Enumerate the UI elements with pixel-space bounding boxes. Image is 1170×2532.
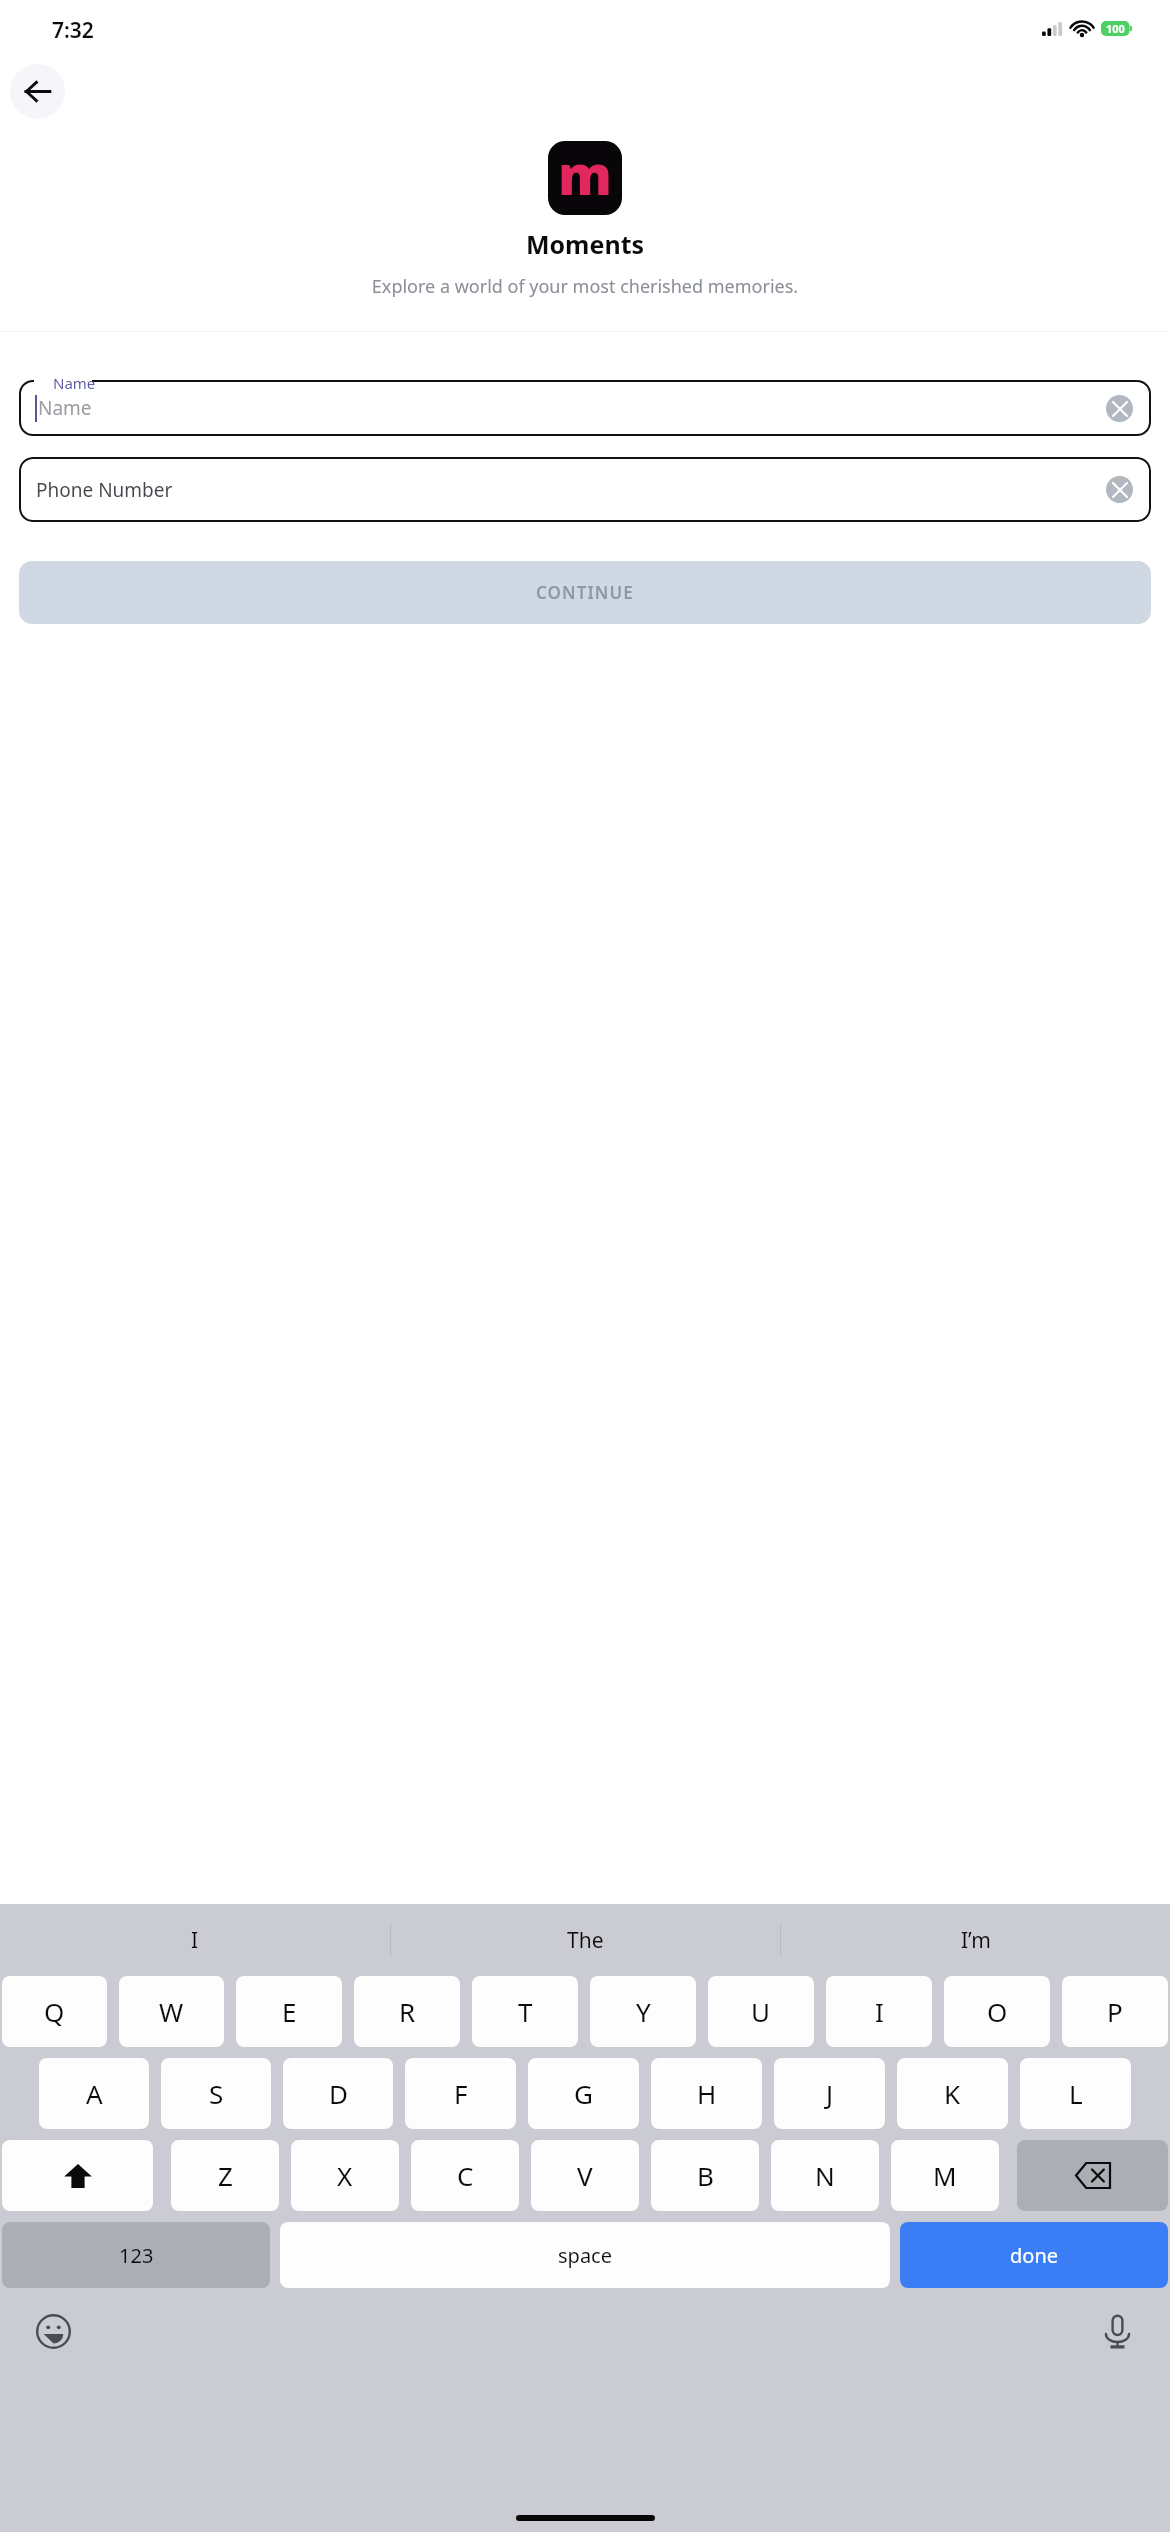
staticText: I: [875, 1994, 884, 2029]
button[interactable]: R: [354, 1976, 460, 2047]
staticText: J: [826, 2076, 834, 2111]
button[interactable]: L: [1020, 2058, 1131, 2129]
button[interactable]: E: [236, 1976, 342, 2047]
staticText: G: [574, 2076, 593, 2111]
button[interactable]: Clear text: [1106, 395, 1133, 422]
staticText: X: [337, 2158, 353, 2193]
button[interactable]: V: [531, 2140, 639, 2211]
staticText: Name: [53, 373, 96, 393]
button[interactable]: T: [472, 1976, 578, 2047]
staticText: done: [1010, 2242, 1059, 2269]
button[interactable]: W: [119, 1976, 224, 2047]
staticText: Q: [44, 1994, 65, 2029]
button[interactable]: Q: [2, 1976, 107, 2047]
staticText: W: [159, 1994, 184, 2029]
staticText: CONTINUE: [536, 581, 634, 604]
staticText: I’m: [961, 1926, 991, 1955]
button[interactable]: G: [528, 2058, 639, 2129]
button[interactable]: space: [280, 2222, 890, 2288]
staticText: V: [577, 2158, 593, 2193]
staticText: C: [457, 2158, 474, 2193]
button[interactable]: K: [897, 2058, 1008, 2129]
button[interactable]: H: [651, 2058, 762, 2129]
staticText: U: [751, 1994, 771, 2029]
staticText: I: [191, 1926, 199, 1955]
staticText: Explore a world of your most cherished m…: [22, 274, 1148, 299]
button[interactable]: A: [39, 2058, 149, 2129]
button[interactable]: M: [891, 2140, 999, 2211]
staticText: N: [815, 2158, 835, 2193]
button[interactable]: I’m: [781, 1904, 1170, 1976]
button[interactable]: B: [651, 2140, 759, 2211]
staticText: F: [454, 2076, 468, 2111]
button[interactable]: Z: [171, 2140, 279, 2211]
button[interactable]: P: [1062, 1976, 1168, 2047]
button[interactable]: D: [283, 2058, 393, 2129]
button[interactable]: I: [0, 1904, 390, 1976]
button[interactable]: O: [944, 1976, 1050, 2047]
button[interactable]: U: [708, 1976, 814, 2047]
staticText: O: [987, 1994, 1008, 2029]
button[interactable]: Shift: [2, 2140, 153, 2211]
staticText: Phone Number: [36, 477, 173, 503]
button[interactable]: N: [771, 2140, 879, 2211]
button[interactable]: S: [161, 2058, 271, 2129]
staticText: Y: [636, 1994, 651, 2029]
staticText: Moments: [0, 227, 1170, 261]
staticText: B: [697, 2158, 714, 2193]
staticText: K: [944, 2076, 961, 2111]
button[interactable]: X: [291, 2140, 399, 2211]
staticText: M: [933, 2158, 957, 2193]
staticText: L: [1069, 2076, 1083, 2111]
staticText: P: [1107, 1994, 1123, 2029]
button[interactable]: J: [774, 2058, 885, 2129]
staticText: 7:32: [52, 16, 94, 45]
button[interactable]: Clear text: [1106, 476, 1133, 503]
button[interactable]: Emoji: [28, 2306, 78, 2356]
staticText: A: [86, 2076, 103, 2111]
staticText: D: [329, 2076, 348, 2111]
staticText: S: [209, 2076, 224, 2111]
button[interactable]: Y: [590, 1976, 696, 2047]
button[interactable]: CONTINUE: [19, 561, 1151, 624]
staticText: 100: [1106, 21, 1125, 36]
staticText: E: [282, 1994, 297, 2029]
button[interactable]: The: [391, 1904, 780, 1976]
button[interactable]: Name: [19, 380, 1151, 436]
staticText: The: [567, 1926, 604, 1955]
button[interactable]: Phone Number: [19, 457, 1151, 522]
button[interactable]: 123: [2, 2222, 270, 2288]
staticText: space: [558, 2242, 612, 2269]
staticText: m: [558, 141, 612, 211]
button[interactable]: F: [405, 2058, 516, 2129]
button[interactable]: Backspace: [1017, 2140, 1168, 2211]
button[interactable]: done: [900, 2222, 1168, 2288]
button[interactable]: C: [411, 2140, 519, 2211]
staticText: T: [518, 1994, 533, 2029]
button[interactable]: Back: [10, 64, 65, 119]
staticText: Z: [218, 2158, 233, 2193]
staticText: 123: [119, 2242, 154, 2269]
button[interactable]: I: [826, 1976, 932, 2047]
staticText: Name: [38, 395, 92, 421]
staticText: R: [399, 1994, 416, 2029]
staticText: H: [697, 2076, 717, 2111]
button[interactable]: Dictate: [1092, 2306, 1142, 2356]
